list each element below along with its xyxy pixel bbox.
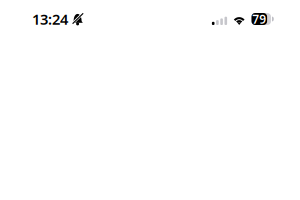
staticText: 79	[252, 11, 266, 27]
staticText: 13:24	[32, 9, 68, 29]
